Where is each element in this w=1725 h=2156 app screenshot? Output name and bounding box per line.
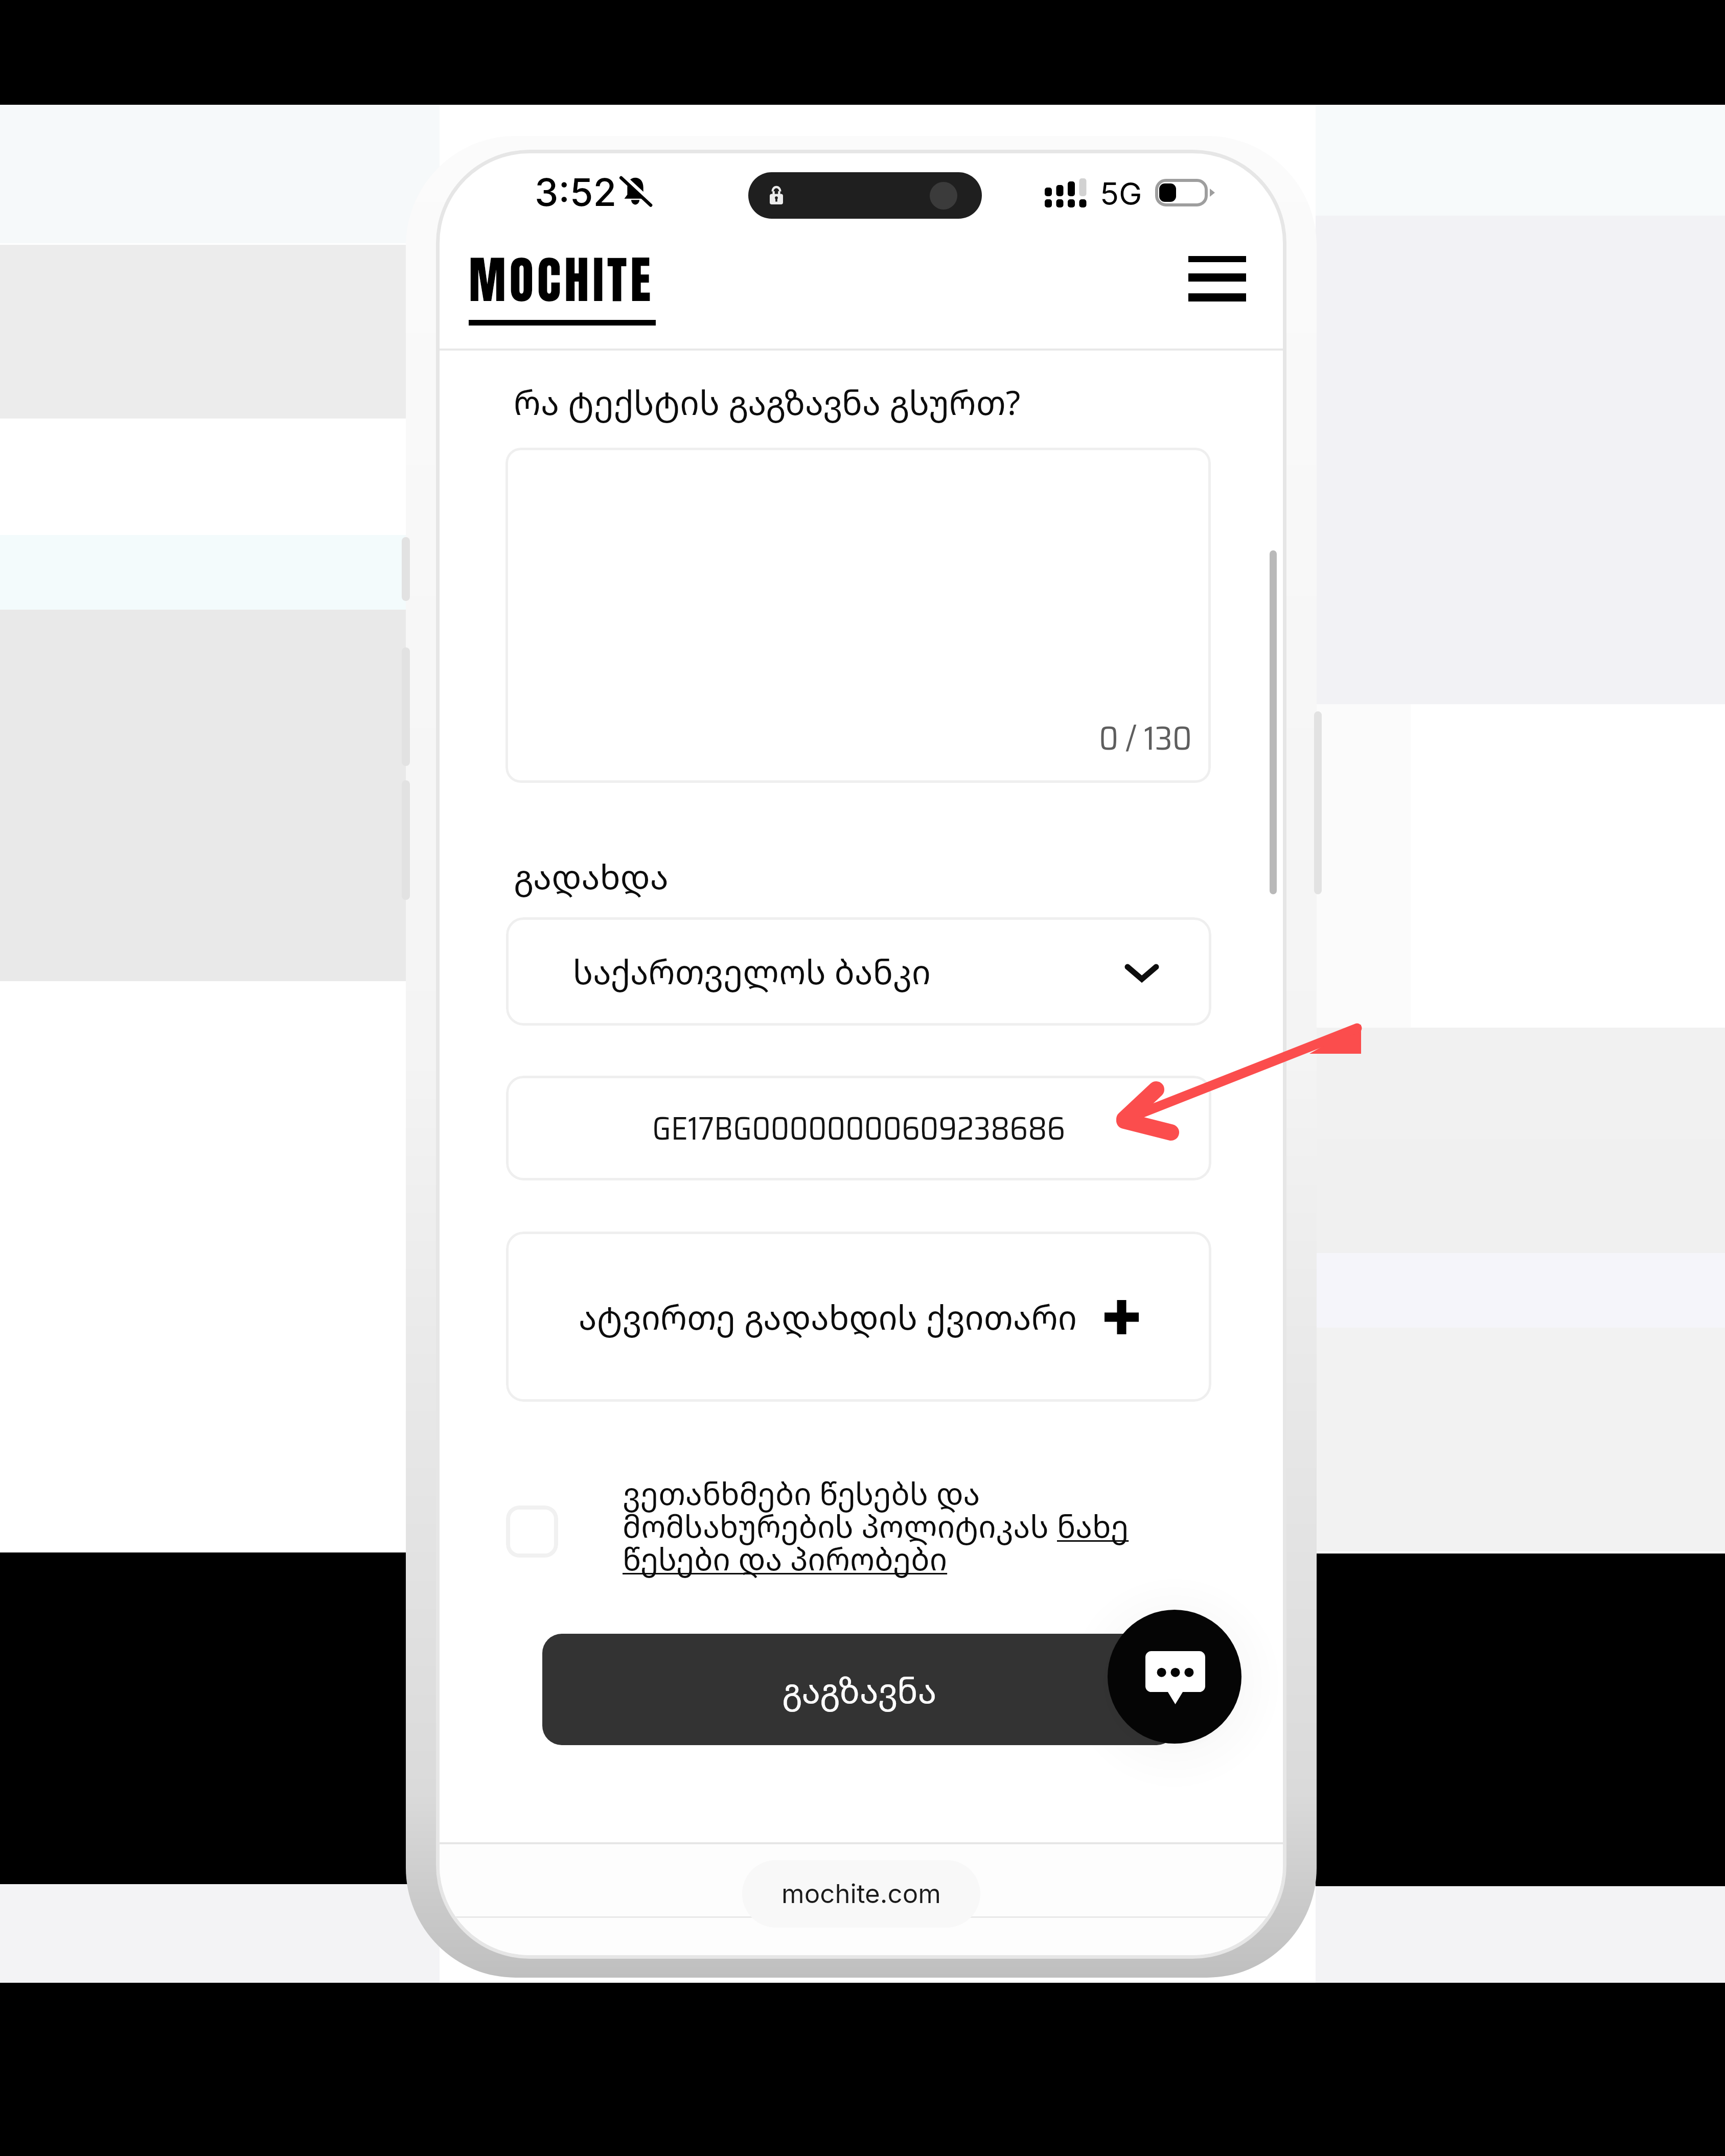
staticText: GE17BG00000000609238686 xyxy=(652,1103,1066,1153)
button[interactable]: 0 / 130 xyxy=(505,448,1211,783)
button[interactable]: საქართველოს ბანკი xyxy=(506,917,1211,1026)
staticText: MOCHITE xyxy=(469,242,654,318)
staticText: 0 / 130 xyxy=(1099,711,1192,764)
button[interactable]: mochite.com xyxy=(742,1860,980,1928)
staticText: რა ტექსტის გაგზავნა გსურთ? xyxy=(514,379,1021,425)
staticText: მომსახურების პოლიტიკას xyxy=(623,1505,1057,1547)
staticText: წესები და პირობები xyxy=(623,1538,948,1580)
staticText: ნახე xyxy=(1057,1505,1129,1547)
button[interactable]: Menu xyxy=(1163,233,1272,324)
button[interactable]: წესები და პირობები xyxy=(623,1538,948,1580)
button[interactable] xyxy=(506,1505,558,1558)
staticText: mochite.com xyxy=(781,1878,941,1910)
staticText: გადახდა xyxy=(514,853,669,899)
button[interactable]: MOCHITE xyxy=(458,235,666,333)
staticText: ატვირთე გადახდის ქვითარი xyxy=(579,1294,1077,1339)
staticText: ვეთანხმები წესებს და xyxy=(623,1472,980,1514)
button[interactable]: Chat xyxy=(1108,1610,1241,1744)
staticText: 5G xyxy=(1100,175,1142,213)
button[interactable]: ნახე xyxy=(1057,1505,1129,1547)
staticText: 3:52 xyxy=(535,169,617,215)
staticText: გაგზავნა xyxy=(782,1666,937,1713)
button[interactable]: გაგზავნა xyxy=(542,1634,1176,1745)
button[interactable]: GE17BG00000000609238686 xyxy=(506,1076,1211,1180)
staticText: საქართველოს ბანკი xyxy=(573,949,931,994)
button[interactable]: ატვირთე გადახდის ქვითარი xyxy=(506,1232,1211,1402)
